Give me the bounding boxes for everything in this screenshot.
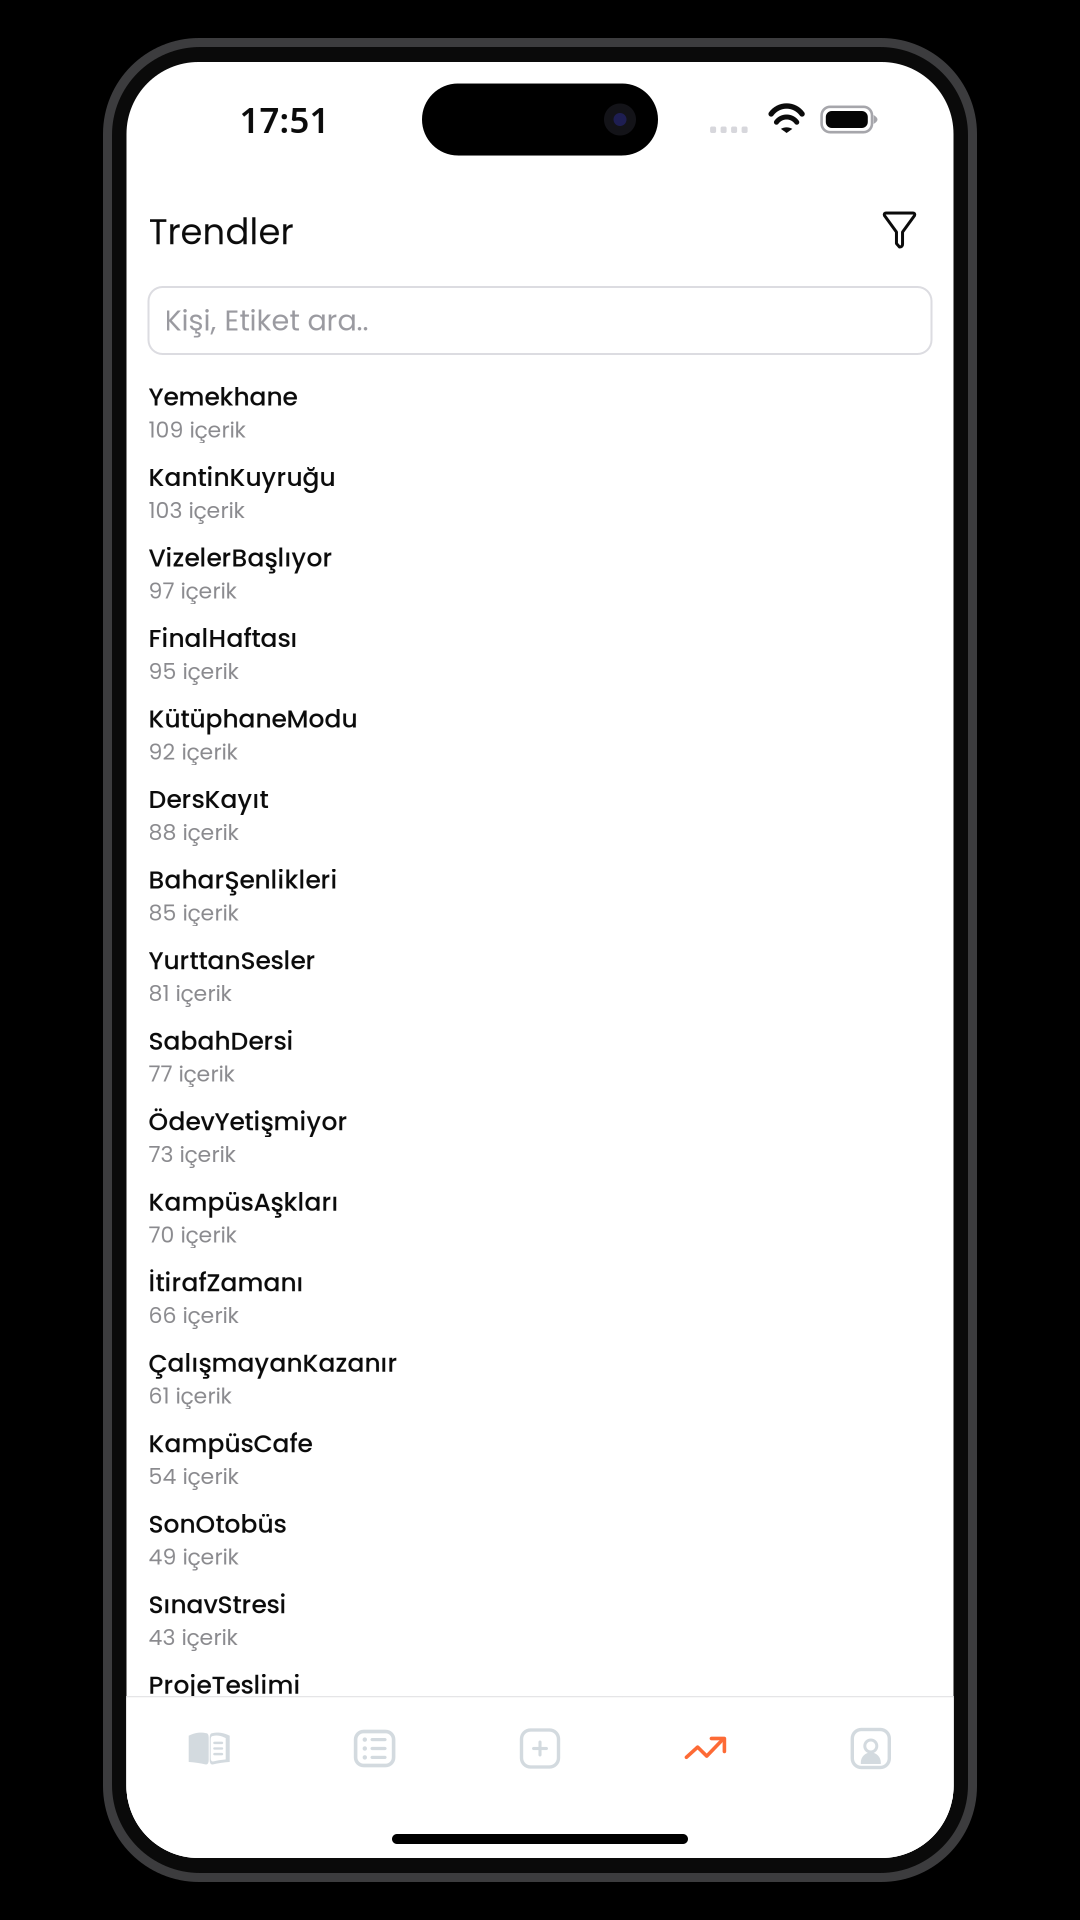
button[interactable]: Profil xyxy=(788,1697,953,1799)
button[interactable]: KampüsAşkları xyxy=(126,1177,953,1258)
button[interactable]: ProjeTeslimi xyxy=(126,1660,953,1741)
staticText: 49 içerik xyxy=(148,1541,238,1572)
button[interactable]: KampüsCafe xyxy=(126,1419,953,1499)
staticText: İtirafZamanı xyxy=(148,1265,303,1300)
staticText: 97 içerik xyxy=(148,575,236,606)
button[interactable]: KantinKuyruğu xyxy=(126,452,953,533)
staticText: Trendler xyxy=(148,207,293,257)
staticText: ÇalışmayanKazanır xyxy=(148,1345,397,1380)
staticText: YurttanSesler xyxy=(148,943,315,978)
button[interactable]: Trendler xyxy=(623,1697,788,1799)
button[interactable]: Ekle xyxy=(457,1697,623,1799)
button[interactable]: Kişi, Etiket ara.. xyxy=(148,287,931,354)
staticText: 73 içerik xyxy=(148,1139,235,1170)
button[interactable]: Yemekhane xyxy=(126,372,953,452)
button[interactable]: SabahDersi xyxy=(126,1016,953,1097)
staticText: ProjeTeslimi xyxy=(148,1667,300,1702)
button[interactable]: Liste xyxy=(292,1697,457,1799)
staticText: 70 içerik xyxy=(148,1219,236,1250)
staticText: Yemekhane xyxy=(148,379,297,414)
staticText: KampüsCafe xyxy=(148,1426,312,1461)
button[interactable]: ÇalışmayanKazanır xyxy=(126,1338,953,1419)
button[interactable]: SonOtobüs xyxy=(126,1499,953,1580)
button[interactable]: BaharŞenlikleri xyxy=(126,855,953,935)
staticText: Kişi, Etiket ara.. xyxy=(164,300,368,340)
staticText: ÖdevYetişmiyor xyxy=(148,1104,347,1139)
staticText: 66 içerik xyxy=(148,1300,238,1331)
staticText: BaharŞenlikleri xyxy=(148,862,337,897)
staticText: SınavStresi xyxy=(148,1587,286,1622)
staticText: KütüphaneModu xyxy=(148,701,357,736)
staticText: 81 içerik xyxy=(148,978,231,1009)
staticText: SabahDersi xyxy=(148,1023,293,1058)
staticText: 109 içerik xyxy=(148,414,245,445)
button[interactable]: Akış xyxy=(126,1697,292,1799)
button[interactable]: Filtrele xyxy=(871,203,931,261)
staticText: 77 içerik xyxy=(148,1058,234,1089)
staticText: KampüsAşkları xyxy=(148,1184,338,1219)
staticText: 43 içerik xyxy=(148,1622,237,1653)
button[interactable]: FinalHaftası xyxy=(126,613,953,694)
staticText: SonOtobüs xyxy=(148,1506,286,1541)
staticText: 88 içerik xyxy=(148,817,238,848)
button[interactable]: KütüphaneModu xyxy=(126,694,953,774)
button[interactable]: YurttanSesler xyxy=(126,935,953,1016)
button[interactable]: SınavStresi xyxy=(126,1580,953,1660)
staticText: 85 içerik xyxy=(148,897,238,928)
staticText: 103 içerik xyxy=(148,495,244,526)
button[interactable]: İtirafZamanı xyxy=(126,1258,953,1338)
staticText: 17:51 xyxy=(239,96,329,142)
staticText: 92 içerik xyxy=(148,736,237,767)
staticText: VizelerBaşlıyor xyxy=(148,540,332,575)
button[interactable]: ÖdevYetişmiyor xyxy=(126,1097,953,1177)
button[interactable]: VizelerBaşlıyor xyxy=(126,533,953,613)
staticText: KantinKuyruğu xyxy=(148,460,335,495)
staticText: 95 içerik xyxy=(148,656,238,687)
staticText: FinalHaftası xyxy=(148,621,297,656)
staticText: 61 içerik xyxy=(148,1380,231,1411)
staticText: 54 içerik xyxy=(148,1461,238,1492)
button[interactable]: DersKayıt xyxy=(126,774,953,855)
staticText: DersKayıt xyxy=(148,782,268,817)
